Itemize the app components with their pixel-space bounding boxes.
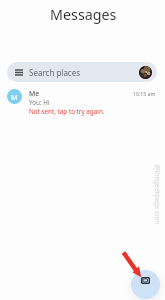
staticText: M (11, 92, 18, 102)
button[interactable]: Start chat (131, 270, 160, 299)
staticText: Messages (50, 5, 117, 24)
staticText: @thegeekpage.com (152, 164, 161, 224)
button[interactable]: Search places (7, 62, 157, 82)
staticText: 10:15 am (133, 90, 156, 97)
button[interactable]: Account (139, 66, 152, 79)
staticText: Search places (29, 67, 81, 78)
staticText: Not sent, tap to try again. (29, 107, 105, 116)
staticText: Me (29, 89, 40, 98)
staticText: You: Hi (29, 98, 50, 107)
button[interactable]: M (0, 86, 165, 114)
